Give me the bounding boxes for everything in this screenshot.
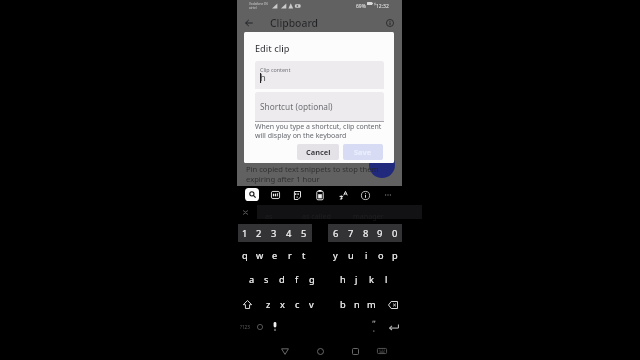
button[interactable]: a — [244, 270, 259, 289]
button[interactable]: Clip content — [255, 61, 384, 89]
button[interactable]: 9 — [373, 224, 387, 242]
button[interactable]: Back — [239, 13, 259, 33]
button[interactable]: Enter — [385, 317, 401, 336]
staticText: Edit clip — [255, 42, 290, 55]
button[interactable]: e — [267, 246, 282, 265]
button[interactable]: n — [349, 295, 364, 314]
button[interactable]: c — [290, 295, 305, 314]
staticText: n — [354, 298, 360, 311]
button[interactable]: Switch keyboard — [373, 342, 391, 360]
button[interactable]: 2 — [252, 224, 266, 242]
button[interactable]: w — [252, 246, 267, 265]
staticText: Clip content — [260, 66, 291, 73]
staticText: When you type a shortcut, clip content w… — [255, 122, 382, 140]
staticText: q — [242, 249, 248, 262]
button[interactable]: u — [343, 246, 358, 265]
button[interactable]: p — [387, 246, 402, 265]
button[interactable]: v — [304, 295, 319, 314]
button[interactable]: 1 — [238, 224, 252, 242]
staticText: p — [392, 249, 398, 262]
button[interactable]: k — [364, 270, 379, 289]
button[interactable]: GIF — [267, 187, 283, 203]
button[interactable]: Add clip — [369, 152, 395, 178]
staticText: 2 — [256, 227, 262, 240]
staticText: Shortcut (optional) — [260, 101, 333, 112]
button[interactable]: Info — [381, 14, 399, 32]
button[interactable]: Voice input — [267, 317, 282, 336]
button[interactable]: t — [296, 246, 311, 265]
staticText: t — [302, 249, 306, 262]
staticText: 0 — [392, 227, 398, 240]
button[interactable]: ?123 — [237, 317, 252, 336]
button[interactable]: 8 — [359, 224, 373, 242]
button[interactable]: q — [237, 246, 252, 265]
staticText: f — [295, 273, 299, 286]
button[interactable]: Back — [276, 342, 294, 360]
button[interactable]: Recent apps — [346, 342, 364, 360]
staticText: h — [260, 71, 266, 84]
staticText: w — [256, 249, 264, 262]
button[interactable]: Backspace — [385, 295, 401, 314]
button[interactable]: s — [259, 270, 274, 289]
staticText: 69% — [356, 3, 366, 10]
button[interactable]: Translate — [335, 187, 351, 203]
button[interactable]: 6 — [329, 224, 343, 242]
staticText: Save — [354, 147, 372, 157]
staticText: l — [385, 273, 388, 286]
button[interactable]: z — [261, 295, 276, 314]
button[interactable]: Search — [245, 188, 259, 201]
staticText: c — [295, 298, 300, 311]
button[interactable]: i — [359, 246, 374, 265]
button[interactable]: 7 — [344, 224, 358, 242]
button[interactable]: Shortcut (optional) — [255, 92, 384, 121]
button[interactable]: Shift — [239, 295, 255, 314]
staticText: 3 — [271, 227, 277, 240]
button[interactable]: x — [275, 295, 290, 314]
button[interactable]: 5 — [297, 224, 311, 242]
button[interactable]: More options — [380, 187, 396, 203]
staticText: 9 — [377, 227, 383, 240]
button[interactable]: r — [282, 246, 297, 265]
staticText: manager — [353, 211, 384, 221]
staticText: z — [266, 298, 271, 311]
staticText: v — [309, 298, 314, 311]
staticText: u — [348, 249, 354, 262]
button[interactable]: g — [304, 270, 319, 289]
button[interactable]: b — [335, 295, 350, 314]
button[interactable]: o — [373, 246, 388, 265]
staticText: Vodafone IN airtel — [249, 2, 268, 10]
staticText: Cancel — [306, 147, 331, 157]
button[interactable]: Settings — [357, 187, 373, 203]
staticText: as — [265, 211, 273, 221]
button[interactable]: m — [364, 295, 379, 314]
button[interactable]: f — [289, 270, 304, 289]
button[interactable]: h — [335, 270, 350, 289]
button[interactable]: as — [265, 211, 273, 221]
button[interactable]: Home — [311, 342, 329, 360]
staticText: i — [365, 249, 368, 262]
staticText: 5 — [301, 227, 307, 240]
button[interactable]: Stickers — [289, 187, 305, 203]
staticText: k — [369, 273, 374, 286]
button[interactable]: d — [274, 270, 289, 289]
button[interactable]: y — [328, 246, 343, 265]
button[interactable]: Emoji — [252, 317, 267, 336]
button[interactable]: 3 — [267, 224, 281, 242]
button[interactable]: manager — [353, 211, 384, 221]
staticText: e — [272, 249, 278, 262]
button[interactable]: Save — [343, 144, 383, 160]
button[interactable]: 4 — [282, 224, 296, 242]
button[interactable] — [366, 317, 381, 336]
button[interactable]: Clipboard — [312, 187, 328, 203]
staticText: y — [333, 249, 338, 262]
button[interactable]: Collapse suggestions — [241, 208, 250, 217]
button[interactable]: as called — [302, 211, 332, 221]
button[interactable]: 0 — [388, 224, 402, 242]
staticText: s — [264, 273, 269, 286]
staticText: 6 — [333, 227, 339, 240]
staticText: d — [279, 273, 285, 286]
button[interactable]: l — [379, 270, 394, 289]
staticText: 1 — [242, 227, 248, 240]
button[interactable]: Cancel — [297, 144, 339, 160]
button[interactable]: j — [349, 270, 364, 289]
